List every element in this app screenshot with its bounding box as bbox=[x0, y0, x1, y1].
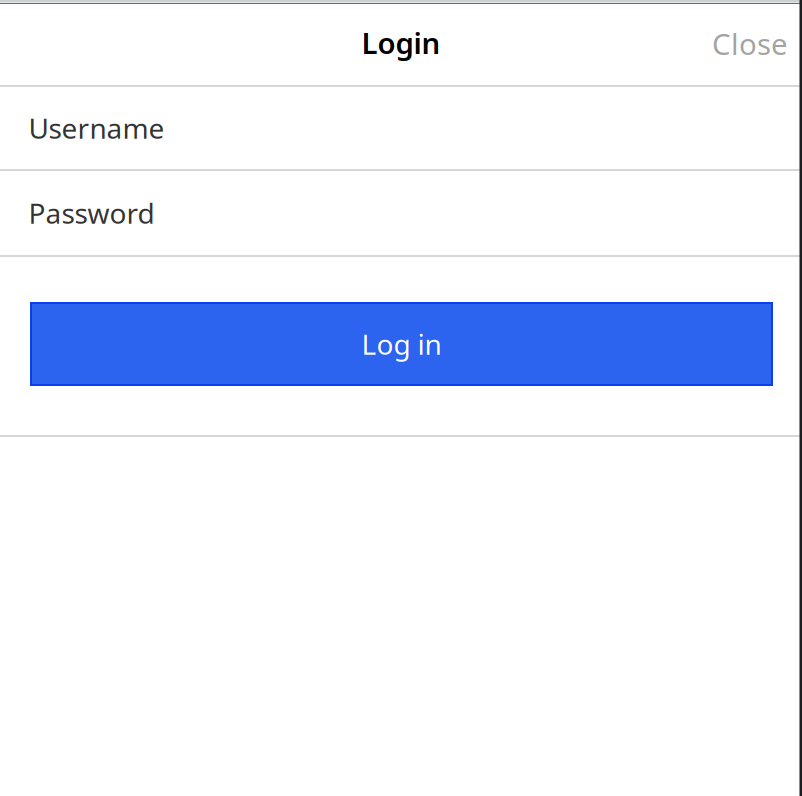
staticText: Username bbox=[28, 109, 164, 147]
button[interactable]: Password bbox=[0, 171, 802, 255]
staticText: Password bbox=[28, 194, 154, 232]
staticText: Close bbox=[712, 24, 788, 63]
button[interactable]: Username bbox=[0, 87, 802, 169]
staticText: Login bbox=[361, 23, 440, 62]
button[interactable]: Log in bbox=[30, 302, 773, 386]
staticText: Log in bbox=[361, 325, 441, 363]
button[interactable]: Close bbox=[712, 14, 802, 75]
